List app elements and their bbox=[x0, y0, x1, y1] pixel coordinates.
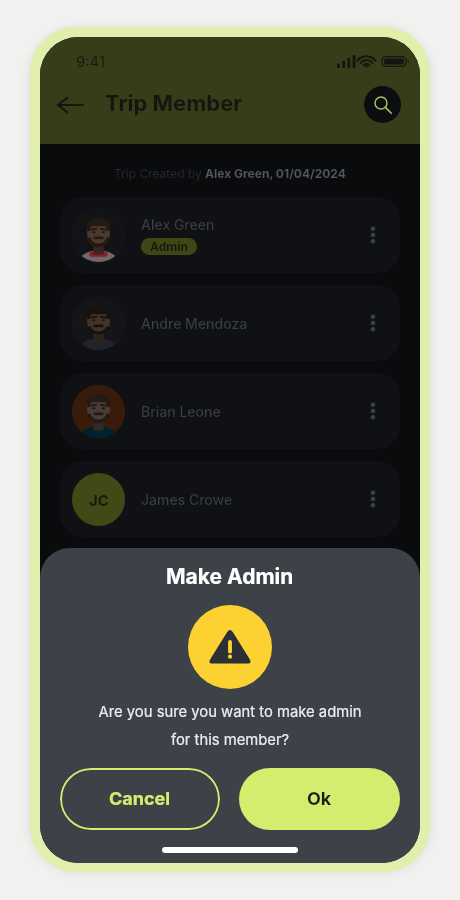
button[interactable]: Ok bbox=[239, 768, 400, 830]
staticText: Alex Green bbox=[141, 216, 215, 233]
staticText: Ok bbox=[307, 788, 332, 810]
button[interactable]: JC bbox=[60, 461, 400, 537]
staticText: JC bbox=[89, 491, 109, 509]
button[interactable]: Alex Green bbox=[60, 197, 400, 273]
staticText: 9:41 bbox=[76, 52, 106, 70]
staticText: Admin bbox=[150, 239, 188, 254]
button[interactable]: Search bbox=[364, 86, 401, 123]
staticText: Make Admin bbox=[166, 564, 294, 589]
staticText: Are you sure you want to make admin for … bbox=[98, 703, 362, 748]
staticText: Trip Member bbox=[105, 90, 243, 117]
button[interactable]: Back bbox=[52, 87, 88, 123]
button[interactable]: More options bbox=[356, 218, 390, 252]
staticText: James Crowe bbox=[141, 491, 233, 508]
staticText: Trip Created by Alex Green, 01/04/2024 bbox=[114, 166, 346, 181]
button[interactable]: Cancel bbox=[60, 768, 220, 830]
button[interactable]: More options bbox=[356, 482, 390, 516]
staticText: Andre Mendoza bbox=[141, 315, 248, 332]
button[interactable]: Andre Mendoza bbox=[60, 285, 400, 361]
staticText: Brian Leone bbox=[141, 403, 221, 420]
button[interactable]: Brian Leone bbox=[60, 373, 400, 449]
button[interactable]: More options bbox=[356, 306, 390, 340]
staticText: Cancel bbox=[109, 788, 171, 810]
button[interactable]: More options bbox=[356, 394, 390, 428]
